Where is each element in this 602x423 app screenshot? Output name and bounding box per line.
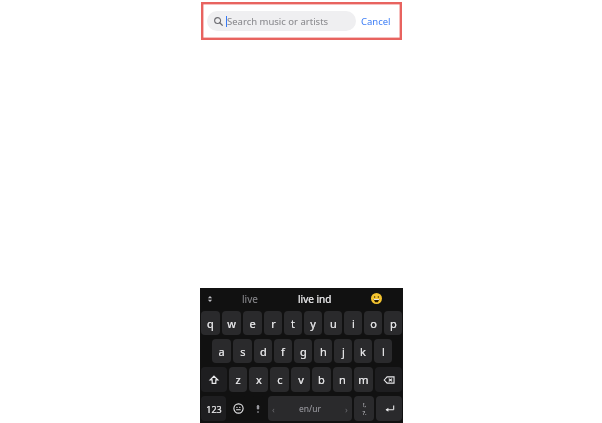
staticText: f <box>281 344 285 359</box>
button[interactable]: Emoji <box>350 288 403 309</box>
staticText: u <box>330 316 337 331</box>
button[interactable]: h <box>314 339 332 363</box>
button[interactable]: t <box>284 311 302 335</box>
button[interactable]: b <box>312 367 331 392</box>
button[interactable]: c <box>270 367 289 392</box>
button[interactable]: y <box>304 311 322 335</box>
button[interactable]: p <box>384 311 402 335</box>
staticText: Cancel <box>361 15 391 28</box>
button[interactable]: m <box>354 367 373 392</box>
button[interactable]: Search music or artists <box>207 11 356 31</box>
button[interactable]: i <box>344 311 362 335</box>
button[interactable]: live <box>220 288 279 309</box>
staticText: y <box>310 316 316 331</box>
button[interactable]: Shift <box>201 367 227 392</box>
button[interactable]: q <box>201 311 220 335</box>
staticText: ‹ <box>272 403 275 415</box>
button[interactable]: Backspace <box>375 367 402 392</box>
staticText: v <box>298 372 304 387</box>
staticText: s <box>240 344 246 359</box>
button[interactable]: 123 <box>201 396 226 421</box>
button[interactable]: x <box>249 367 268 392</box>
staticText: n <box>339 372 346 387</box>
button[interactable]: g <box>294 339 312 363</box>
button[interactable]: Enter <box>376 396 402 421</box>
button[interactable]: d <box>254 339 272 363</box>
staticText: e <box>249 316 256 331</box>
staticText: l <box>382 344 385 359</box>
button[interactable]: j <box>334 339 352 363</box>
staticText: j <box>342 344 345 359</box>
staticText: z <box>235 372 241 387</box>
staticText: t <box>291 316 295 331</box>
staticText: c <box>277 372 283 387</box>
staticText: 123 <box>206 403 222 415</box>
button[interactable]: e <box>243 311 262 335</box>
button[interactable]: Expand suggestions <box>200 288 220 309</box>
staticText: › <box>345 403 348 415</box>
staticText: en/ur <box>299 403 321 415</box>
button[interactable]: f <box>274 339 292 363</box>
button[interactable]: k <box>354 339 372 363</box>
staticText: live ind <box>298 292 332 306</box>
button[interactable]: live ind <box>279 288 350 309</box>
staticText: x <box>256 372 262 387</box>
button[interactable]: o <box>364 311 382 335</box>
button[interactable]: v <box>291 367 310 392</box>
button[interactable]: z <box>229 367 247 392</box>
staticText: live <box>242 292 258 306</box>
staticText: o <box>370 316 377 331</box>
button[interactable]: s <box>233 339 252 363</box>
staticText: g <box>300 344 307 359</box>
button[interactable]: r <box>264 311 282 335</box>
staticText: q <box>207 316 214 331</box>
staticText: r <box>271 316 276 331</box>
staticText: p <box>390 316 397 331</box>
staticText: d <box>260 344 267 359</box>
staticText: !, ?. <box>362 401 367 417</box>
staticText: h <box>320 344 327 359</box>
staticText: k <box>360 344 366 359</box>
button[interactable]: w <box>222 311 241 335</box>
button[interactable]: u <box>324 311 342 335</box>
button[interactable]: !, ?. <box>354 396 374 421</box>
button[interactable]: n <box>333 367 352 392</box>
staticText: a <box>218 344 225 359</box>
button[interactable]: a <box>212 339 231 363</box>
button[interactable]: l <box>374 339 392 363</box>
button[interactable]: Sticker <box>228 396 248 421</box>
staticText: m <box>358 372 369 387</box>
button[interactable]: Cancel <box>356 12 396 31</box>
button[interactable]: ‹ <box>268 396 352 421</box>
staticText: w <box>227 316 236 331</box>
button[interactable]: Voice input <box>250 396 266 421</box>
staticText: b <box>318 372 325 387</box>
staticText: i <box>352 316 355 331</box>
staticText: Search music or artists <box>227 15 329 28</box>
